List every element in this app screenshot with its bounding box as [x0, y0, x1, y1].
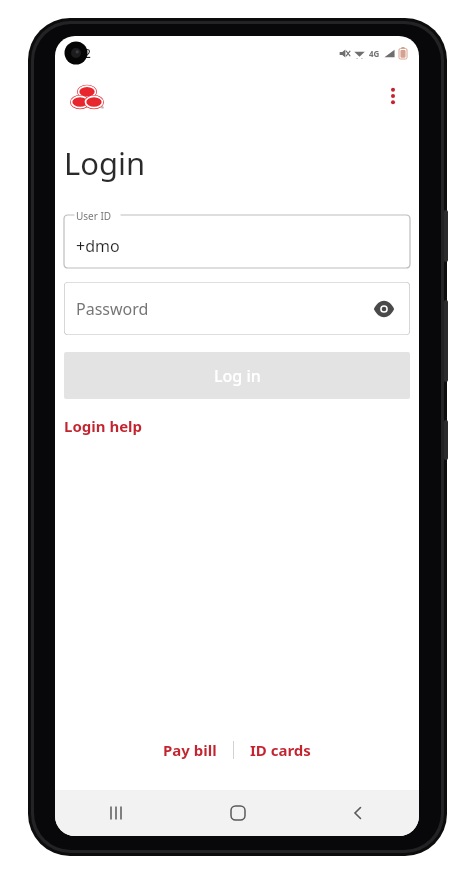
button[interactable]: More options [371, 74, 415, 118]
button[interactable]: ID cards [242, 734, 319, 766]
staticText: +dmo [76, 235, 120, 257]
staticText: Login help [64, 416, 143, 436]
staticText: Log in [214, 365, 261, 387]
staticText: 4G [369, 48, 380, 59]
button[interactable]: State Farm home [61, 78, 113, 116]
button[interactable]: User ID [64, 208, 410, 268]
button[interactable]: Password [64, 282, 410, 335]
staticText: Password [76, 298, 149, 320]
staticText: Pay bill [163, 740, 217, 760]
staticText: Login [64, 142, 146, 184]
button[interactable]: Show password [366, 291, 402, 327]
button[interactable]: Recent apps [55, 790, 177, 836]
button[interactable]: Home [177, 790, 298, 836]
staticText: 9:22 [67, 45, 91, 61]
staticText: User ID [76, 209, 112, 223]
button[interactable]: Back [298, 790, 419, 836]
button[interactable]: Login help [64, 413, 143, 439]
staticText: ID cards [250, 740, 311, 760]
button[interactable]: Pay bill [155, 734, 225, 766]
